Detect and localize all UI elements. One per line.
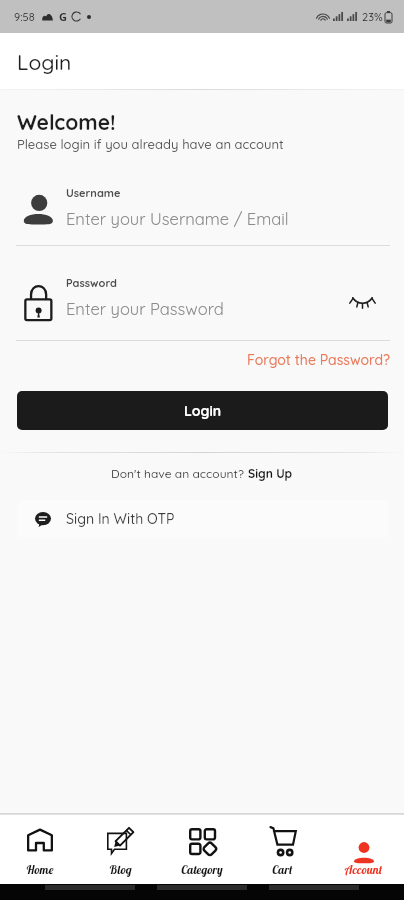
staticText: Password xyxy=(66,276,117,290)
button[interactable]: Home xyxy=(0,815,80,884)
staticText: Don't have an account? xyxy=(111,466,248,481)
staticText: Blog xyxy=(109,862,132,877)
staticText: Cart xyxy=(272,862,293,877)
staticText: Welcome! xyxy=(17,109,116,135)
button[interactable]: Cart xyxy=(242,815,323,884)
button[interactable]: Account xyxy=(323,815,404,884)
staticText: 23% xyxy=(362,10,383,24)
button[interactable]: Sign Up xyxy=(248,466,293,481)
staticText: G xyxy=(59,9,67,24)
staticText: Home xyxy=(26,862,54,877)
staticText: Login xyxy=(184,402,222,420)
button[interactable]: Forgot the Password? xyxy=(0,351,390,369)
staticText: Sign In With OTP xyxy=(66,510,175,528)
button[interactable]: Category xyxy=(161,815,242,884)
button[interactable]: Blog xyxy=(80,815,161,884)
staticText: Category xyxy=(181,862,223,877)
staticText: Enter your Password xyxy=(66,298,224,319)
staticText: Login xyxy=(17,49,72,75)
staticText: Enter your Username / Email xyxy=(66,208,289,229)
staticText: Account xyxy=(345,862,383,877)
staticText: 9:58 xyxy=(14,10,35,24)
button[interactable]: Show password xyxy=(345,284,379,318)
staticText: Username xyxy=(66,186,121,200)
button[interactable]: Sign In With OTP xyxy=(17,500,388,538)
button[interactable]: Login xyxy=(17,391,388,430)
staticText: Please login if you already have an acco… xyxy=(17,136,284,152)
